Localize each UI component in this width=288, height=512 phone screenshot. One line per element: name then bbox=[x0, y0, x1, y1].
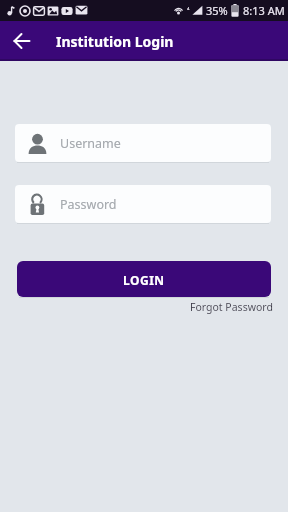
staticText: ⁴ bbox=[187, 6, 190, 16]
staticText: 35% bbox=[206, 3, 228, 18]
button[interactable]: Forgot Password bbox=[190, 300, 273, 314]
staticText: Username bbox=[60, 135, 121, 152]
staticText: LOGIN bbox=[123, 272, 165, 288]
staticText: Forgot Password bbox=[190, 300, 273, 314]
button[interactable]: Password bbox=[15, 185, 271, 223]
button[interactable]: Username bbox=[15, 124, 271, 162]
button[interactable] bbox=[0, 21, 44, 61]
staticText: Password bbox=[60, 196, 117, 213]
staticText: Institution Login bbox=[56, 32, 174, 51]
staticText: 8:13 AM bbox=[243, 3, 285, 18]
button[interactable]: LOGIN bbox=[17, 261, 271, 297]
